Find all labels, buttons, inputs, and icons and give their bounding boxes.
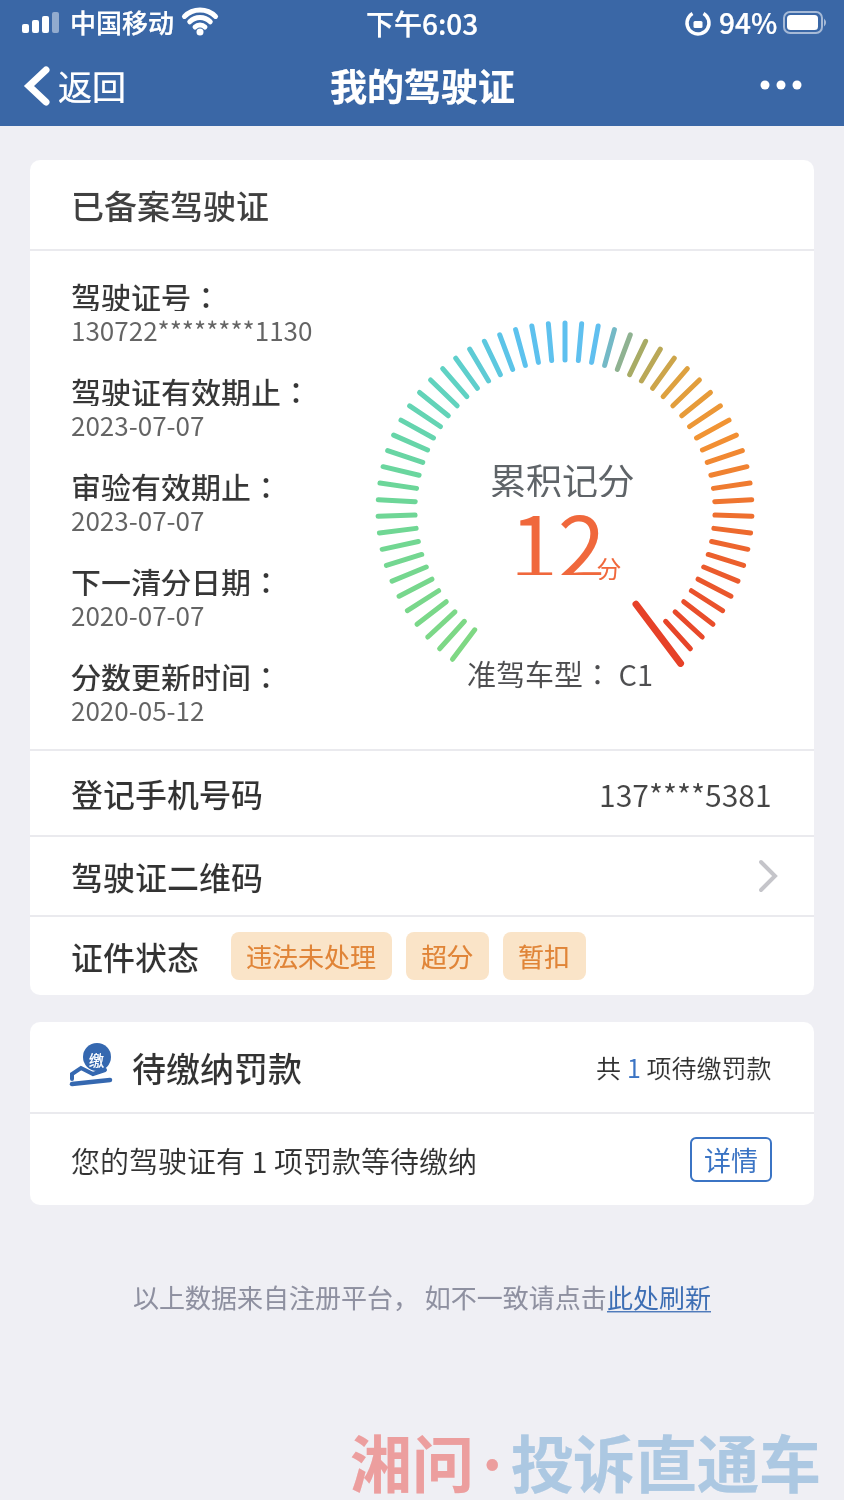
staticText: 中国移动 [70, 3, 175, 41]
staticText: 登记手机号码 [71, 770, 264, 816]
staticText: 待缴纳罚款 [132, 1043, 302, 1092]
button[interactable]: 驾驶证二维码 [71, 837, 778, 915]
staticText: 以上数据来自注册平台， 如不一致请点击 [133, 1278, 607, 1316]
staticText: 缴 [89, 1049, 105, 1071]
staticText: 您的驾驶证有 1 项罚款等待缴纳 [71, 1139, 478, 1181]
button[interactable]: 此处刷新 [607, 1278, 712, 1316]
staticText: 准驾车型： C1 [467, 652, 654, 692]
staticText: 12 [510, 479, 606, 575]
staticText: 2023-07-07 [71, 501, 205, 536]
staticText: 返回 [58, 61, 126, 110]
staticText: 项待缴罚款 [641, 1049, 772, 1085]
staticText: 超分 [421, 937, 474, 975]
staticText: 分数更新时间： [71, 654, 281, 691]
staticText: 证件状态 [71, 933, 200, 979]
staticText: 驾驶证二维码 [71, 853, 264, 899]
staticText: 审验有效期止： [71, 464, 281, 501]
staticText: 下一清分日期： [71, 559, 281, 596]
staticText: 94% [719, 2, 778, 43]
staticText: 下午6:03 [366, 3, 479, 44]
staticText: 2020-07-07 [71, 596, 205, 631]
staticText: 违法未处理 [246, 937, 377, 975]
staticText: 2023-07-07 [71, 406, 205, 441]
staticText: 已备案驾驶证 [71, 181, 269, 229]
staticText: 投诉直通车 [511, 1416, 822, 1500]
staticText: 驾驶证有效期止： [71, 369, 311, 406]
staticText: 累积记分 [490, 453, 635, 497]
staticText: 分 [597, 550, 621, 580]
button[interactable]: 详情 [690, 1137, 772, 1182]
staticText: 详情 [704, 1140, 758, 1179]
staticText: 2020-05-12 [71, 691, 205, 726]
staticText: 共 [596, 1049, 627, 1085]
staticText: 驾驶证号： [71, 274, 221, 311]
staticText: 湘问· [350, 1416, 511, 1500]
staticText: 我的驾驶证 [330, 58, 515, 112]
button[interactable]: 返回 [24, 61, 126, 110]
staticText: 暂扣 [518, 937, 571, 975]
button[interactable] [760, 75, 806, 95]
staticText: 137****5381 [599, 772, 772, 815]
staticText: 130722********1130 [71, 311, 313, 346]
staticText: 1 [627, 1049, 641, 1085]
